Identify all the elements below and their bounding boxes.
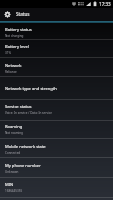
staticText: Service status: [5, 104, 32, 110]
staticText: Status: [16, 11, 30, 17]
button[interactable]: Battery level: [0, 40, 113, 58]
staticText: Unknown: [5, 170, 19, 174]
button[interactable]: Service status: [0, 100, 113, 121]
button[interactable]: Network: [0, 58, 113, 77]
button[interactable]: Mobile network state: [0, 139, 113, 158]
staticText: Not charging: [5, 34, 24, 38]
button[interactable]: Roaming: [0, 121, 113, 139]
staticText: Mobile network state: [5, 144, 46, 150]
staticText: MIN: [5, 182, 14, 188]
staticText: Reliance: [5, 70, 17, 74]
staticText: Connected: [5, 151, 21, 155]
staticText: Battery status: [5, 27, 32, 33]
staticText: 31%: [5, 51, 11, 55]
staticText: 1686445355: [5, 189, 23, 193]
staticText: 17:33: [99, 1, 111, 7]
staticText: Not roaming: [5, 131, 23, 135]
staticText: Network type and strength: [5, 86, 57, 92]
staticText: My phone number: [5, 163, 41, 169]
button[interactable]: Network type and strength: [0, 77, 113, 100]
staticText: Battery level: [5, 44, 29, 50]
button[interactable]: Battery status: [0, 23, 113, 40]
staticText: Network: [5, 63, 22, 69]
button[interactable]: MIN: [0, 178, 113, 198]
staticText: Roaming: [5, 124, 23, 130]
button[interactable]: My phone number: [0, 158, 113, 178]
button[interactable]: Status: [0, 8, 113, 21]
staticText: Voice: In service / Data: In service: [5, 111, 52, 115]
